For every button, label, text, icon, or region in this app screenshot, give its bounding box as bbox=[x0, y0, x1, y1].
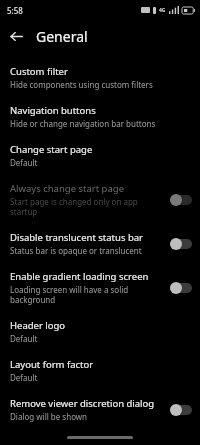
button[interactable]: Enable gradient loading screen bbox=[0, 263, 200, 312]
button[interactable]: Back bbox=[5, 25, 27, 47]
staticText: Loading screen will have a solid backgro… bbox=[10, 284, 164, 305]
staticText: Hide or change navigation bar buttons bbox=[10, 118, 156, 129]
staticText: Default bbox=[10, 333, 38, 344]
staticText: Start page is changed only on app startu… bbox=[10, 196, 164, 217]
staticText: Change start page bbox=[10, 143, 93, 156]
button[interactable]: Toggle bbox=[170, 281, 192, 294]
staticText: General bbox=[36, 27, 88, 46]
button[interactable]: Disable translucent status bar bbox=[0, 224, 200, 263]
staticText: Enable gradient loading screen bbox=[10, 270, 149, 283]
button[interactable]: Toggle bbox=[170, 237, 192, 250]
button[interactable]: Always change start page bbox=[0, 175, 200, 224]
button[interactable]: Toggle bbox=[170, 403, 192, 416]
staticText: Header logo bbox=[10, 319, 66, 332]
button[interactable]: Remove viewer discretion dialog bbox=[0, 390, 200, 429]
staticText: Remove viewer discretion dialog bbox=[10, 397, 155, 410]
staticText: Status bar is opaque or translucent bbox=[10, 245, 142, 256]
button[interactable]: Navigation buttons bbox=[0, 97, 200, 136]
staticText: Default bbox=[10, 372, 38, 383]
staticText: Dialog will be shown bbox=[10, 411, 88, 422]
staticText: Layout form factor bbox=[10, 358, 94, 371]
button[interactable]: Change start page bbox=[0, 136, 200, 175]
button[interactable]: Custom filter bbox=[0, 58, 200, 97]
staticText: Default bbox=[10, 157, 38, 168]
staticText: 4G bbox=[159, 7, 166, 14]
staticText: 5:58 bbox=[7, 5, 23, 16]
button[interactable]: Toggle bbox=[170, 193, 192, 206]
button[interactable]: Header logo bbox=[0, 312, 200, 351]
staticText: Hide components using custom filters bbox=[10, 79, 153, 90]
button[interactable]: Layout form factor bbox=[0, 351, 200, 390]
staticText: Disable translucent status bar bbox=[10, 231, 144, 244]
staticText: Custom filter bbox=[10, 65, 68, 78]
staticText: Navigation buttons bbox=[10, 104, 96, 117]
staticText: Always change start page bbox=[10, 182, 124, 195]
